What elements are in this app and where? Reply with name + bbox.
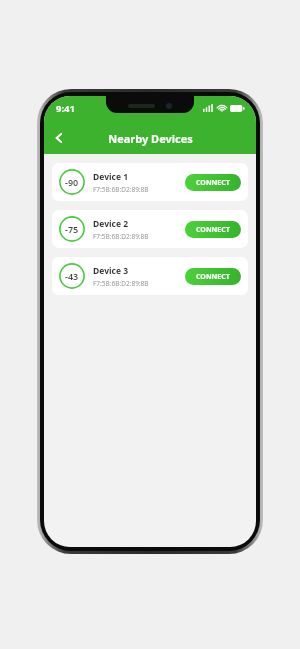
staticText: -43 — [65, 270, 79, 282]
staticText: Device 2 — [93, 218, 129, 230]
staticText: F7:5B:6B:D2:89:8B — [93, 232, 149, 241]
button[interactable]: Back — [44, 123, 74, 153]
staticText: CONNECT — [196, 225, 230, 235]
staticText: F7:5B:6B:D2:89:8B — [93, 185, 149, 194]
staticText: Nearby Devices — [108, 131, 193, 146]
button[interactable]: -75 — [52, 210, 248, 248]
staticText: -75 — [65, 223, 79, 235]
staticText: F7:5B:6B:D2:89:8B — [93, 279, 149, 288]
button[interactable]: -43 — [52, 257, 248, 295]
staticText: -90 — [65, 176, 79, 188]
button[interactable]: CONNECT — [185, 174, 241, 191]
staticText: CONNECT — [196, 178, 230, 188]
staticText: 9:41 — [56, 102, 75, 115]
button[interactable]: CONNECT — [185, 268, 241, 285]
button[interactable]: CONNECT — [185, 221, 241, 238]
staticText: CONNECT — [196, 272, 230, 282]
staticText: Device 1 — [93, 171, 129, 183]
staticText: Device 3 — [93, 265, 129, 277]
button[interactable]: -90 — [52, 163, 248, 201]
